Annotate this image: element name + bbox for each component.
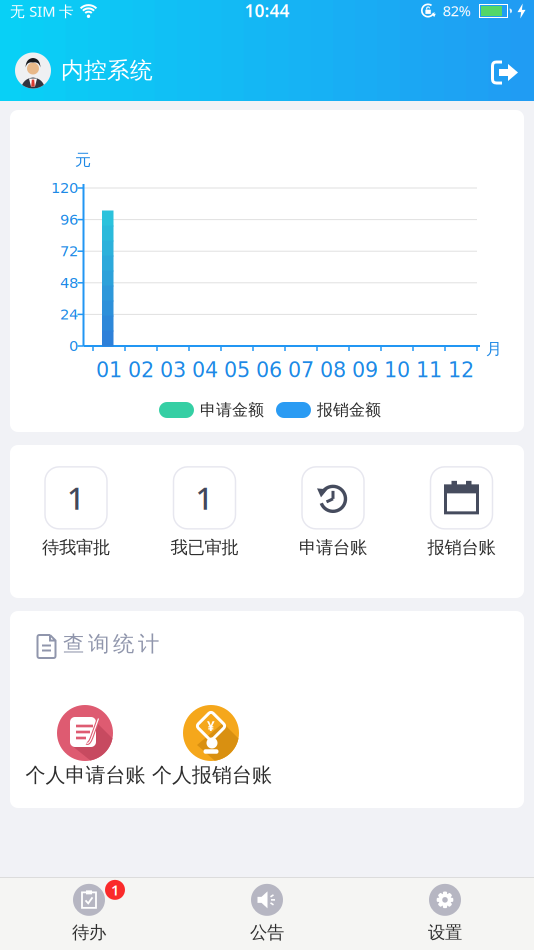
staticText: 1 [67,477,85,518]
staticText: 06 [256,358,282,382]
staticText: 元 [75,150,91,170]
button[interactable]: 公告 [178,877,356,950]
staticText: 04 [192,358,218,382]
staticText: 个人报销台账 [152,763,272,787]
staticText: 72 [60,243,78,260]
staticText: 05 [224,358,250,382]
staticText: 待我审批 [42,537,110,558]
button[interactable]: 1 [12,467,140,558]
staticText: 公告 [250,922,284,943]
staticText: 1 [111,880,119,900]
staticText: 24 [60,306,78,323]
staticText: 报销台账 [427,537,495,558]
staticText: 待办 [72,922,106,943]
staticText: 82% [442,1,470,20]
staticText: 11 [416,358,442,382]
button[interactable]: 报销台账 [397,467,526,558]
staticText: 我已审批 [170,537,238,558]
staticText: 查询统计 [63,631,159,657]
button[interactable]: ¥ [141,611,282,808]
button[interactable]: 退出登录 [491,58,534,82]
staticText: ¥ [207,717,215,735]
staticText: 申请金额 [200,400,264,420]
staticText: 报销金额 [317,400,381,420]
staticText: 月 [486,339,502,359]
button[interactable]: 个人申请台账 [15,611,156,808]
staticText: 申请台账 [299,537,367,558]
staticText: 03 [160,358,186,382]
staticText: 1 [195,477,213,518]
staticText: 120 [51,179,78,197]
staticText: 09 [352,358,378,382]
staticText: 无 SIM 卡 [10,1,74,21]
staticText: 12 [448,358,474,382]
staticText: 07 [288,358,314,382]
staticText: 02 [128,358,154,382]
staticText: 10 [384,358,410,382]
button[interactable]: 1 [140,467,269,558]
staticText: 48 [60,274,78,291]
staticText: 01 [96,358,122,382]
staticText: 96 [60,211,78,228]
staticText: 设置 [428,922,462,943]
staticText: 个人申请台账 [25,763,145,787]
button[interactable]: 申请台账 [269,467,397,558]
staticText: 内控系统 [61,57,153,84]
staticText: 10:44 [244,0,289,22]
button[interactable]: 1 [0,877,178,950]
staticText: 08 [320,358,346,382]
button[interactable]: 设置 [356,877,534,950]
staticText: 0 [69,337,78,355]
